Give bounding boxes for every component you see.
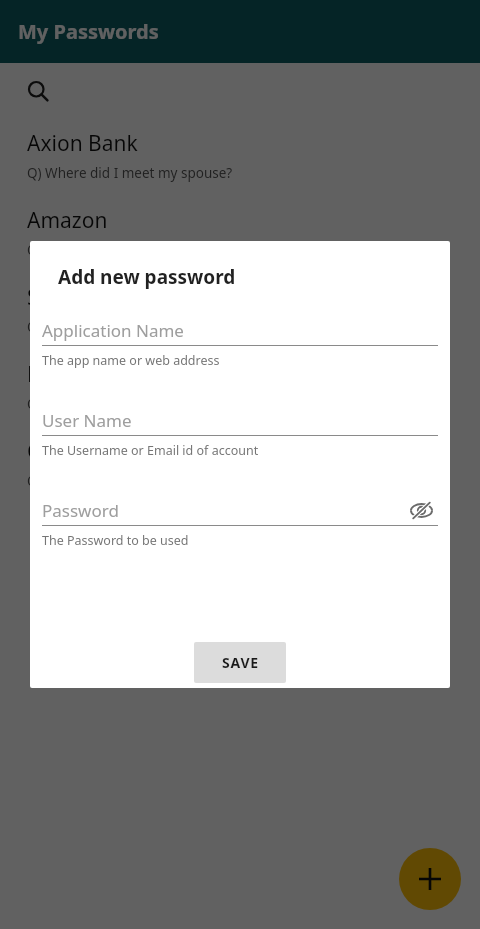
- staticText: Q) First pet name?: [27, 318, 143, 336]
- staticText: Github: [27, 437, 95, 466]
- button[interactable]: Search: [16, 69, 60, 113]
- button[interactable]: SAVE: [194, 642, 286, 683]
- button[interactable]: Axion Bank: [0, 119, 480, 196]
- staticText: Add new password: [58, 264, 236, 290]
- staticText: My Passwords: [18, 18, 159, 45]
- button[interactable]: Amazon: [0, 196, 480, 273]
- staticText: Axion Bank: [27, 129, 138, 158]
- button[interactable]: Medium: [0, 350, 480, 427]
- staticText: Spotify: [27, 283, 96, 312]
- staticText: Q) Where did I meet my spouse?: [27, 164, 233, 182]
- button[interactable]: Spotify: [0, 273, 480, 350]
- button[interactable]: Add password: [399, 848, 461, 910]
- staticText: Application Name: [42, 319, 184, 342]
- button[interactable]: Toggle password visibility: [404, 495, 438, 525]
- staticText: The Password to be used: [42, 532, 189, 549]
- staticText: Medium: [27, 360, 109, 389]
- staticText: Q) Favourite colour?: [27, 241, 155, 259]
- button[interactable]: Github: [0, 427, 480, 504]
- staticText: SAVE: [222, 653, 259, 672]
- staticText: Password: [42, 499, 119, 522]
- staticText: The Username or Email id of account: [42, 442, 259, 459]
- staticText: The app name or web address: [42, 352, 220, 369]
- staticText: Q) Childhood nickname?: [27, 472, 182, 490]
- staticText: Q) City of birth?: [27, 395, 126, 413]
- staticText: Amazon: [27, 206, 108, 235]
- staticText: User Name: [42, 409, 132, 432]
